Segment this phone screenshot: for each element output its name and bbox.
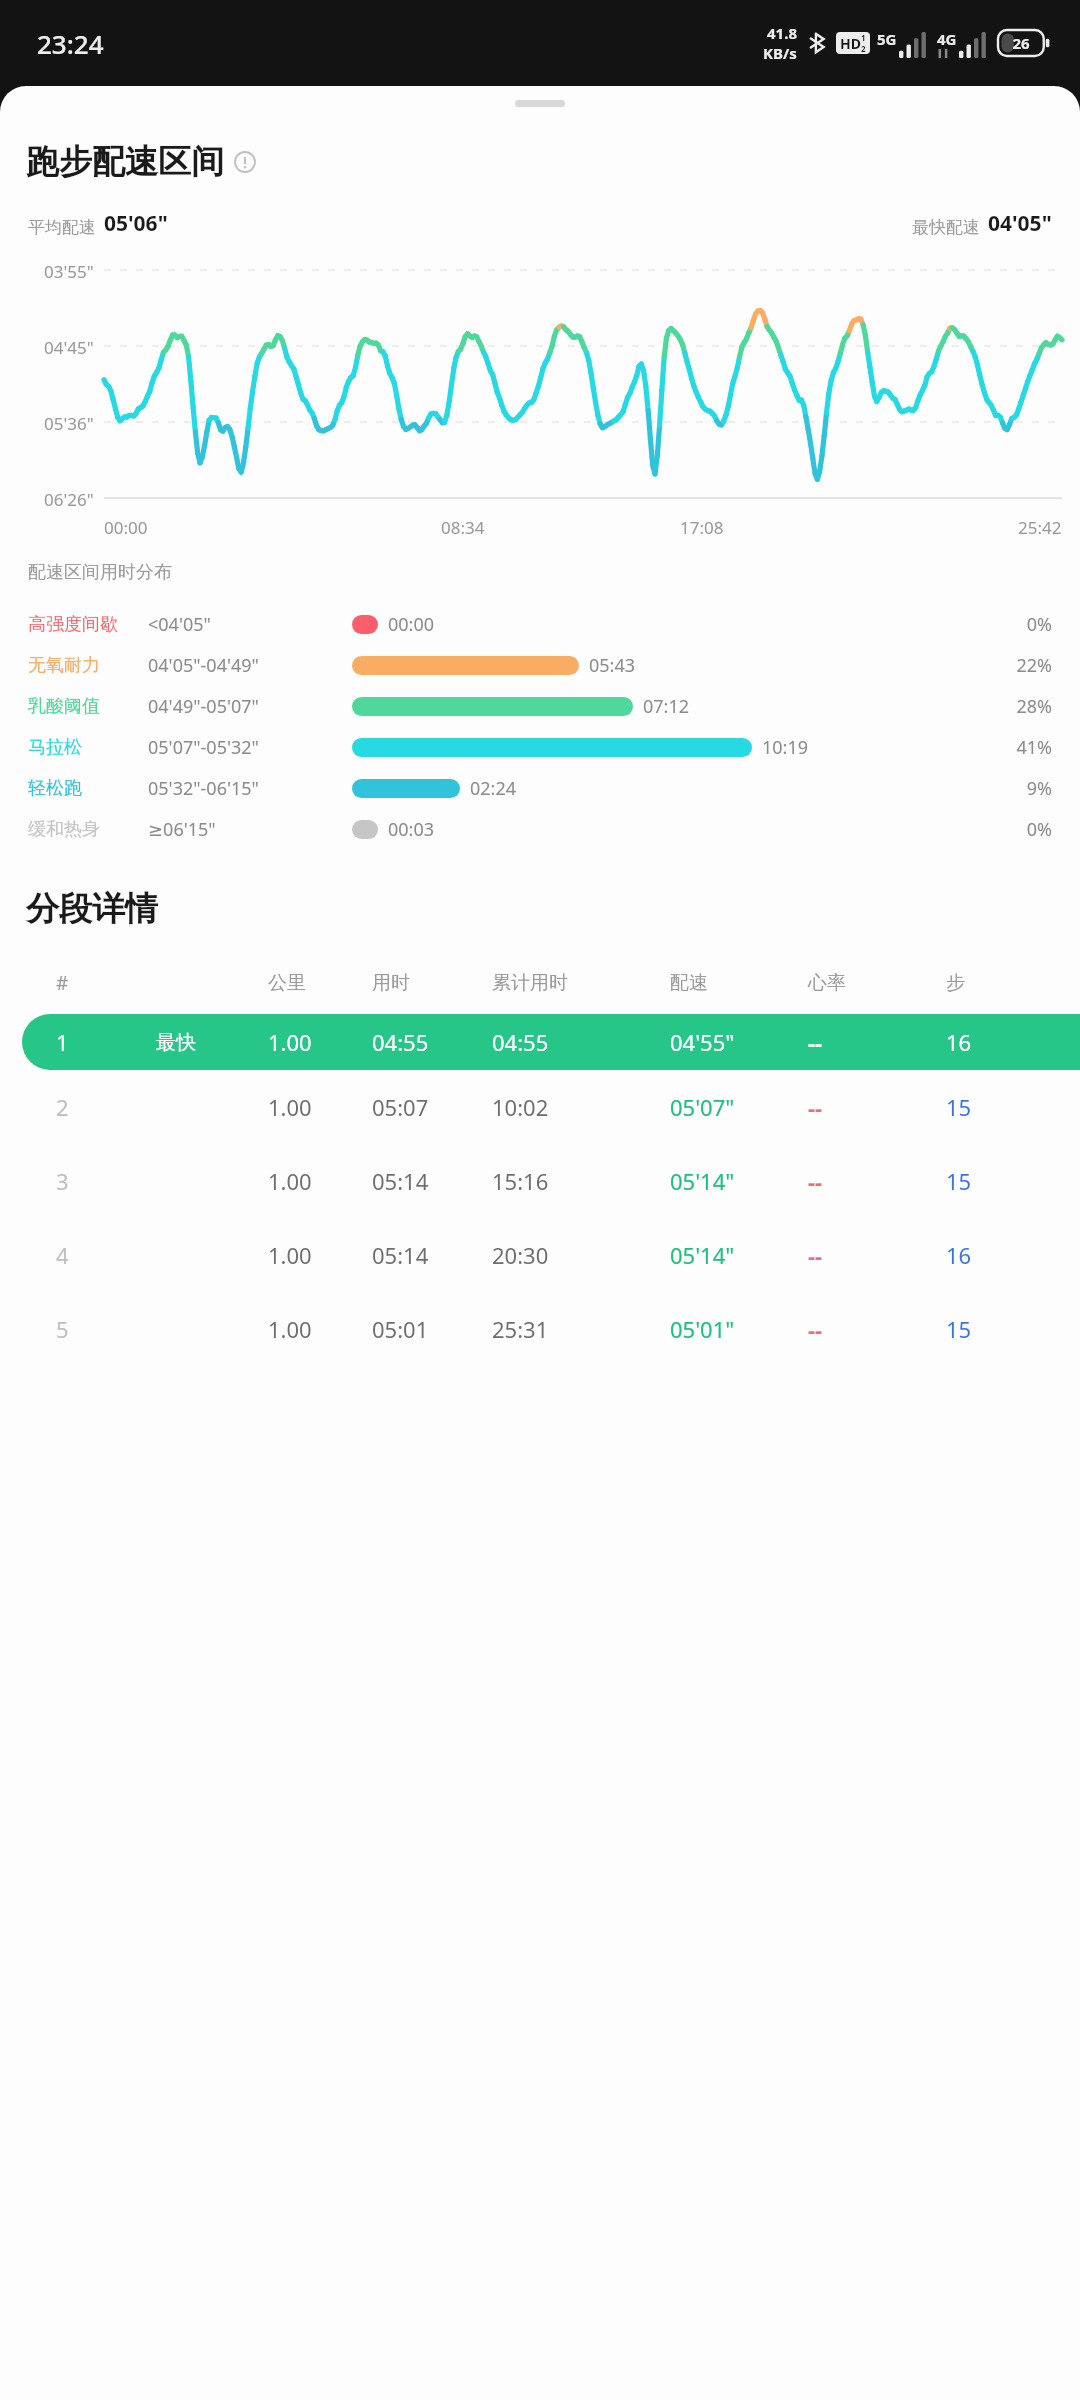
- staticText: 3: [56, 1166, 69, 1196]
- staticText: <04'05": [148, 612, 344, 637]
- staticText: 步: [946, 971, 965, 995]
- staticText: 公里: [268, 971, 306, 995]
- staticText: 05'32"-06'15": [148, 776, 344, 801]
- staticText: 05'36": [44, 412, 94, 432]
- staticText: 00:00: [388, 612, 435, 637]
- staticText: 10:02: [492, 1092, 549, 1122]
- staticText: 07:12: [643, 694, 690, 719]
- staticText: --: [808, 1314, 823, 1344]
- staticText: 04'49"-05'07": [148, 694, 344, 719]
- staticText: 4G: [937, 29, 957, 49]
- staticText: 乳酸阈值: [28, 695, 140, 718]
- staticText: 用时: [372, 971, 410, 995]
- staticText: 26: [998, 33, 1044, 53]
- staticText: 1.00: [268, 1240, 312, 1270]
- staticText: 2: [56, 1092, 69, 1122]
- button[interactable]: 4: [0, 1218, 1080, 1292]
- staticText: 跑步配速区间: [26, 141, 224, 183]
- staticText: 10:19: [762, 735, 809, 760]
- staticText: 平均配速: [28, 217, 96, 238]
- staticText: 04'05": [988, 209, 1052, 238]
- staticText: 03'55": [44, 260, 94, 280]
- staticText: 最快配速: [912, 217, 980, 238]
- staticText: #: [56, 970, 69, 996]
- staticText: ≥06'15": [148, 817, 344, 842]
- staticText: 分段详情: [26, 888, 158, 930]
- staticText: 04'05"-04'49": [148, 653, 344, 678]
- staticText: --: [808, 1166, 823, 1196]
- staticText: 04:55: [372, 1027, 429, 1057]
- staticText: 9%: [986, 776, 1052, 801]
- staticText: 02:24: [470, 776, 517, 801]
- staticText: 41%: [986, 735, 1052, 760]
- staticText: 2: [861, 43, 866, 54]
- staticText: 17:08: [680, 516, 724, 539]
- staticText: 25:42: [1018, 516, 1062, 539]
- staticText: 最快: [156, 1030, 196, 1055]
- staticText: 配速: [670, 971, 708, 995]
- button[interactable]: 说明: [234, 151, 256, 173]
- staticText: 05'07": [670, 1092, 735, 1122]
- staticText: 4: [56, 1240, 69, 1270]
- staticText: --: [808, 1092, 823, 1122]
- staticText: 05'06": [104, 209, 168, 238]
- button[interactable]: 缓和热身: [0, 809, 1080, 850]
- button[interactable]: 乳酸阈值: [0, 686, 1080, 727]
- staticText: HD: [840, 34, 861, 53]
- staticText: 5: [56, 1314, 69, 1344]
- button[interactable]: 高强度间歇: [0, 604, 1080, 645]
- staticText: 配速区间用时分布: [28, 561, 172, 584]
- staticText: 15: [946, 1092, 972, 1122]
- staticText: 马拉松: [28, 736, 140, 759]
- staticText: 00:03: [388, 817, 435, 842]
- staticText: 00:00: [104, 516, 148, 539]
- staticText: 05:07: [372, 1092, 429, 1122]
- staticText: 无氧耐力: [28, 654, 140, 677]
- staticText: 15: [946, 1314, 972, 1344]
- staticText: 06'26": [44, 488, 94, 508]
- staticText: 高强度间歇: [28, 613, 140, 636]
- staticText: 心率: [808, 971, 846, 995]
- staticText: 04'45": [44, 336, 94, 356]
- staticText: 1: [861, 32, 866, 43]
- staticText: 16: [946, 1027, 972, 1057]
- staticText: --: [808, 1240, 823, 1270]
- staticText: 25:31: [492, 1314, 549, 1344]
- staticText: KB/s: [763, 43, 797, 63]
- staticText: 1.00: [268, 1314, 312, 1344]
- staticText: 23:24: [37, 26, 104, 61]
- staticText: 20:30: [492, 1240, 549, 1270]
- staticText: 08:34: [441, 516, 485, 539]
- staticText: 05:14: [372, 1166, 429, 1196]
- staticText: 15:16: [492, 1166, 549, 1196]
- staticText: 05'14": [670, 1166, 735, 1196]
- staticText: 05'14": [670, 1240, 735, 1270]
- staticText: 轻松跑: [28, 777, 140, 800]
- staticText: 0%: [986, 817, 1052, 842]
- button[interactable]: 轻松跑: [0, 768, 1080, 809]
- staticText: 累计用时: [492, 971, 568, 995]
- staticText: 41.8: [767, 23, 797, 43]
- staticText: 15: [946, 1166, 972, 1196]
- staticText: 05:14: [372, 1240, 429, 1270]
- button[interactable]: 1: [22, 1014, 1080, 1070]
- staticText: 05:01: [372, 1314, 429, 1344]
- button[interactable]: 2: [0, 1070, 1080, 1144]
- staticText: 1.00: [268, 1166, 312, 1196]
- button[interactable]: 3: [0, 1144, 1080, 1218]
- staticText: 28%: [986, 694, 1052, 719]
- staticText: 0%: [986, 612, 1052, 637]
- staticText: 5G: [877, 29, 897, 49]
- staticText: --: [808, 1027, 823, 1057]
- staticText: 05'01": [670, 1314, 735, 1344]
- staticText: 1.00: [268, 1027, 312, 1057]
- staticText: 16: [946, 1240, 972, 1270]
- staticText: 04'55": [670, 1027, 735, 1057]
- staticText: 04:55: [492, 1027, 549, 1057]
- button[interactable]: 5: [0, 1292, 1080, 1366]
- button[interactable]: 无氧耐力: [0, 645, 1080, 686]
- button[interactable]: 马拉松: [0, 727, 1080, 768]
- staticText: 22%: [986, 653, 1052, 678]
- staticText: 05'07"-05'32": [148, 735, 344, 760]
- staticText: 1.00: [268, 1092, 312, 1122]
